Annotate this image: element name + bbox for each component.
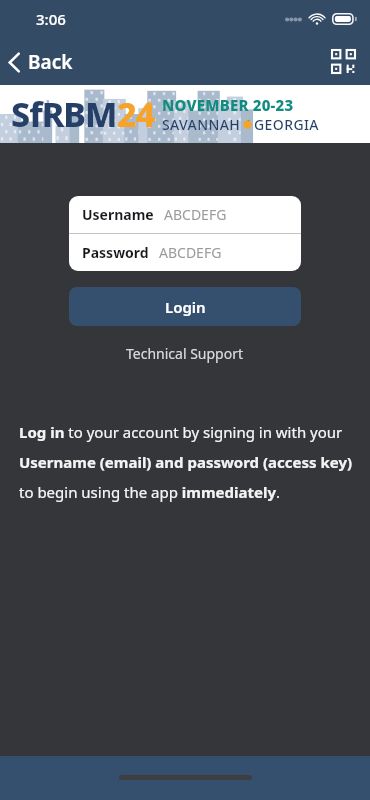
staticText: SfRBM: [11, 91, 117, 137]
button[interactable]: Password: [69, 234, 301, 271]
staticText: NOVEMBER 20-23: [162, 95, 294, 115]
staticText: 3:06: [36, 9, 66, 29]
button[interactable]: Login: [69, 287, 301, 326]
staticText: Technical Support: [126, 344, 244, 363]
staticText: ABCDEFG: [164, 205, 227, 224]
staticText: Username: [82, 205, 154, 224]
staticText: SAVANNAH: [162, 115, 241, 134]
staticText: Back: [28, 49, 73, 75]
staticText: ABCDEFG: [159, 243, 222, 262]
staticText: GEORGIA: [254, 115, 319, 134]
staticText: Log in to your account by signing in wit…: [19, 422, 354, 502]
staticText: 24: [117, 91, 155, 137]
button[interactable]: Username: [69, 196, 301, 233]
staticText: Password: [82, 243, 149, 262]
button[interactable]: Scan QR code: [330, 48, 357, 75]
button[interactable]: Technical Support: [118, 341, 252, 366]
staticText: Login: [165, 297, 206, 317]
button[interactable]: Back: [0, 44, 85, 80]
